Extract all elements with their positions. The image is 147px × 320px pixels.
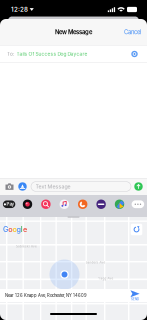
button[interactable]: Google Maps bbox=[110, 199, 129, 210]
staticText: New Message bbox=[55, 28, 92, 36]
button[interactable]: SEND bbox=[126, 289, 144, 301]
staticText: To: bbox=[7, 51, 14, 57]
staticText: Text Message bbox=[35, 183, 70, 190]
staticText: 12:28 bbox=[11, 6, 28, 13]
staticText: l bbox=[21, 225, 23, 234]
staticText: e bbox=[23, 225, 27, 234]
button[interactable]: Apple Pay bbox=[0, 199, 18, 210]
button[interactable]: Add contact bbox=[127, 47, 141, 61]
staticText: Flagg Ave bbox=[97, 277, 113, 280]
staticText: o bbox=[12, 225, 16, 234]
button[interactable]: Digital Touch bbox=[18, 199, 37, 210]
staticText: SEND bbox=[131, 297, 139, 301]
staticText: Tails Of Success Dog Daycare bbox=[16, 51, 87, 57]
button[interactable]: Photos bbox=[37, 199, 55, 210]
staticText: Near 126 Knapp Ave, Rochester, NY 14609 bbox=[5, 293, 87, 298]
button[interactable]: Camera bbox=[3, 180, 16, 193]
staticText: Sobieski Ave bbox=[16, 245, 37, 248]
button[interactable]: Music bbox=[55, 199, 73, 210]
button[interactable]: App bbox=[73, 199, 92, 210]
button[interactable]: Text Message bbox=[31, 182, 131, 191]
button[interactable]: Cancel bbox=[116, 19, 147, 45]
button[interactable]: App bbox=[92, 199, 110, 210]
staticText: Cancel bbox=[124, 28, 141, 36]
button[interactable]: iMessage apps bbox=[16, 180, 29, 193]
button[interactable]: More apps bbox=[129, 199, 147, 210]
staticText: Sanders Ave bbox=[85, 261, 105, 264]
button[interactable]: Send bbox=[132, 180, 145, 193]
staticText: Pay bbox=[6, 202, 14, 207]
staticText: o bbox=[8, 225, 12, 234]
button[interactable]: Recenter map bbox=[130, 223, 143, 236]
staticText: G bbox=[3, 225, 8, 234]
staticText: g bbox=[17, 225, 21, 234]
